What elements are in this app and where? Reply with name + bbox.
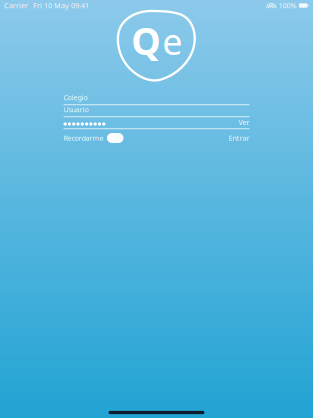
staticText: Entrar xyxy=(228,133,249,143)
staticText: Usuario xyxy=(63,105,88,114)
button[interactable]: Recordarme xyxy=(63,133,123,143)
button[interactable]: Usuario xyxy=(63,105,249,117)
staticText: Colegio xyxy=(63,93,87,102)
staticText: 100% xyxy=(278,1,296,10)
button[interactable]: Entrar xyxy=(223,133,249,142)
button[interactable]: Colegio xyxy=(63,93,249,105)
staticText: Carrier xyxy=(4,1,28,10)
button[interactable]: Ver xyxy=(237,118,249,126)
staticText: Q xyxy=(131,15,161,66)
staticText: Ver xyxy=(238,117,249,127)
staticText: Recordarme xyxy=(63,133,103,143)
staticText: Fri 10 May 09:41 xyxy=(33,1,89,10)
staticText: e xyxy=(162,17,182,66)
